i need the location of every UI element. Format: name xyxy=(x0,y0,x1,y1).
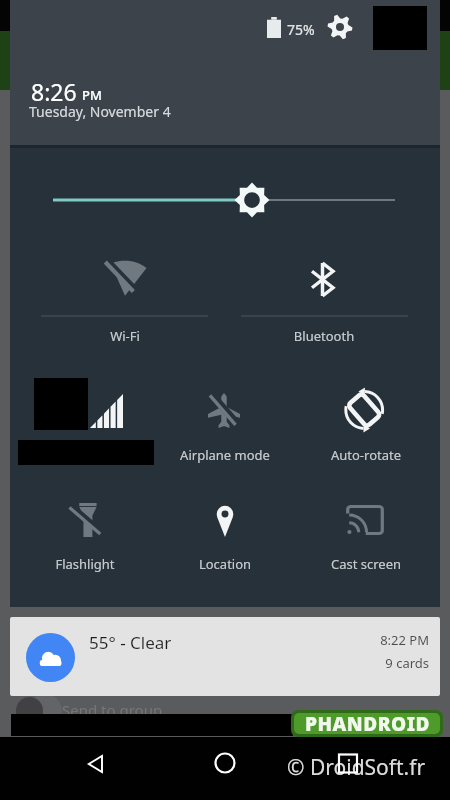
staticText: Airplane mode xyxy=(165,446,285,464)
staticText: Bluetooth xyxy=(264,327,384,345)
button[interactable] xyxy=(346,505,384,535)
button[interactable] xyxy=(312,263,333,296)
staticText: 8:22 PM xyxy=(380,631,429,649)
button[interactable]: Back xyxy=(81,748,111,780)
button[interactable]: Recent apps xyxy=(333,748,363,778)
staticText: Wi-Fi xyxy=(65,327,185,345)
staticText: 75% xyxy=(287,20,315,39)
staticText: 8:26 xyxy=(31,76,77,107)
staticText: Location xyxy=(165,555,285,573)
staticText: Auto-rotate xyxy=(306,446,426,464)
staticText: Cast screen xyxy=(306,555,426,573)
staticText: Tuesday, November 4 xyxy=(29,102,171,121)
button[interactable]: Home xyxy=(210,748,240,778)
staticText: PHANDROID xyxy=(305,711,430,737)
staticText: © DroidSoft.fr xyxy=(287,753,426,782)
staticText: 55° - Clear xyxy=(89,631,172,654)
staticText: PM xyxy=(82,86,102,104)
button[interactable] xyxy=(213,503,237,537)
staticText: Send to group xyxy=(62,700,163,720)
button[interactable]: PHANDROID xyxy=(291,710,443,737)
button[interactable] xyxy=(90,394,123,428)
button[interactable] xyxy=(345,390,385,430)
button[interactable]: Settings xyxy=(327,14,353,40)
staticText: 9 cards xyxy=(385,654,429,672)
button[interactable] xyxy=(106,261,144,296)
staticText: Flashlight xyxy=(25,555,145,573)
button[interactable] xyxy=(208,393,240,428)
button[interactable] xyxy=(70,503,98,537)
button[interactable]: 55° - Clear xyxy=(10,617,440,696)
